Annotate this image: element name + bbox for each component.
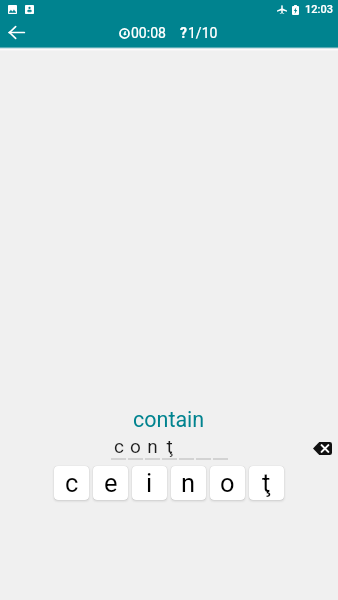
button[interactable]: ţ [249, 466, 284, 500]
staticText: 1/10 [188, 25, 218, 41]
button[interactable]: e [93, 466, 128, 500]
button[interactable]: c [54, 466, 89, 500]
staticText: contain [133, 407, 205, 432]
button[interactable]: i [132, 466, 167, 500]
staticText: o [130, 435, 141, 457]
staticText: ? [180, 25, 187, 41]
staticText: n [181, 468, 196, 498]
staticText: 00:08 [131, 25, 166, 41]
staticText: e [104, 468, 118, 498]
button[interactable]: n [171, 466, 206, 500]
staticText: ţ [166, 435, 173, 457]
button[interactable]: o [210, 466, 245, 500]
staticText: c [114, 435, 124, 457]
staticText: c [65, 468, 79, 498]
staticText: n [147, 435, 158, 457]
staticText: i [146, 468, 153, 498]
button[interactable]: Backspace [309, 438, 335, 458]
staticText: ţ [262, 468, 271, 498]
staticText: 12:03 [305, 3, 333, 16]
staticText: o [220, 468, 235, 498]
button[interactable]: Back [2, 18, 31, 47]
